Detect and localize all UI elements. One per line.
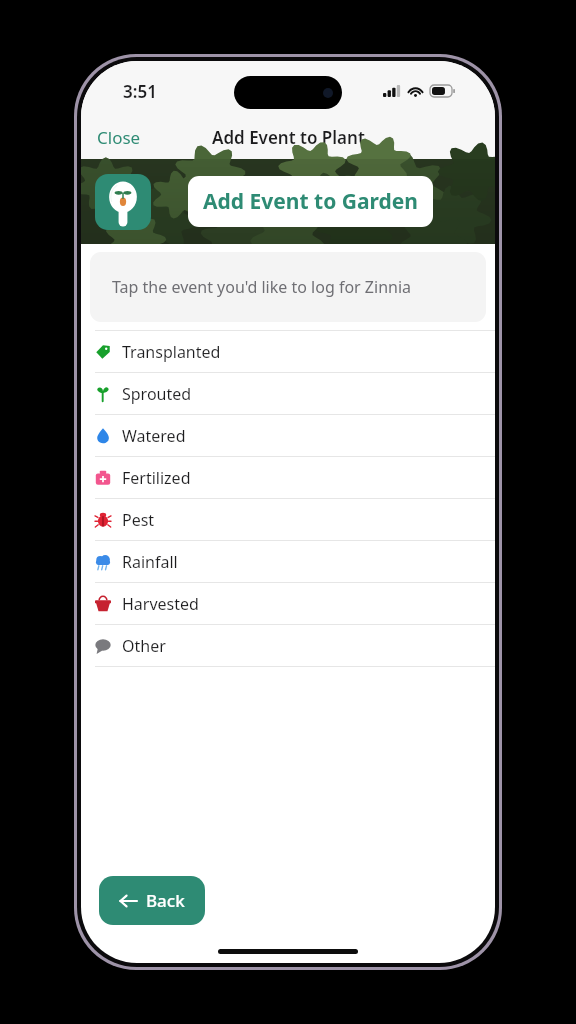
staticText: Close (97, 126, 141, 149)
staticText: Back (146, 889, 185, 912)
staticText: Add Event to Plant (212, 126, 365, 149)
staticText: Add Event to Garden (203, 187, 418, 216)
staticText: Tap the event you'd like to log for Zinn… (112, 276, 412, 298)
button[interactable]: Tap the event you'd like to log for Zinn… (90, 252, 486, 322)
staticText: Rainfall (122, 551, 178, 573)
staticText: Transplanted (122, 341, 221, 363)
button[interactable]: Back (99, 876, 205, 925)
staticText: Pest (122, 509, 155, 531)
button[interactable]: Other (81, 625, 495, 666)
button[interactable]: Add Event to Garden (188, 176, 433, 227)
staticText: Fertilized (122, 467, 191, 489)
staticText: 3:51 (123, 80, 157, 103)
button[interactable]: Pest (81, 499, 495, 540)
staticText: Watered (122, 425, 186, 447)
button[interactable]: App icon (95, 174, 151, 230)
button[interactable]: Rainfall (81, 541, 495, 582)
button[interactable]: Close (81, 120, 157, 155)
button[interactable]: Sprouted (81, 373, 495, 414)
button[interactable]: Transplanted (81, 331, 495, 372)
staticText: Other (122, 635, 166, 657)
button[interactable]: Fertilized (81, 457, 495, 498)
button[interactable]: Harvested (81, 583, 495, 624)
staticText: Harvested (122, 593, 199, 615)
button[interactable]: Watered (81, 415, 495, 456)
staticText: Sprouted (122, 383, 192, 405)
